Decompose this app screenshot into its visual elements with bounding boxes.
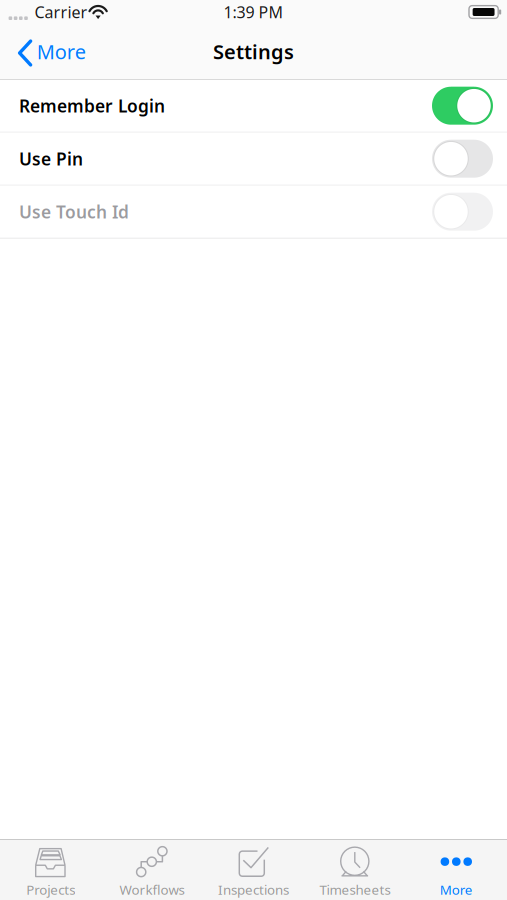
staticText: Use Touch Id	[19, 200, 129, 223]
button[interactable]: Projects	[0, 840, 101, 900]
button[interactable]: More	[0, 26, 96, 76]
button[interactable]: Use Touch Id	[0, 186, 507, 238]
staticText: Settings	[213, 38, 294, 65]
button[interactable]: Use Pin	[0, 133, 507, 185]
button[interactable]: More	[406, 840, 507, 900]
button[interactable]: Workflows	[101, 840, 203, 900]
staticText: Remember Login	[19, 94, 165, 117]
button[interactable]: Inspections	[203, 840, 304, 900]
staticText: Carrier	[34, 1, 87, 23]
staticText: Inspections	[218, 881, 289, 898]
staticText: 1:39 PM	[223, 1, 283, 23]
staticText: Use Pin	[19, 147, 83, 170]
staticText: More	[440, 881, 473, 898]
staticText: Projects	[26, 881, 75, 898]
button[interactable]: Remember Login	[0, 80, 507, 132]
button[interactable]: Timesheets	[304, 840, 406, 900]
staticText: Timesheets	[319, 881, 390, 898]
staticText: More	[37, 38, 86, 65]
staticText: Workflows	[120, 881, 185, 898]
